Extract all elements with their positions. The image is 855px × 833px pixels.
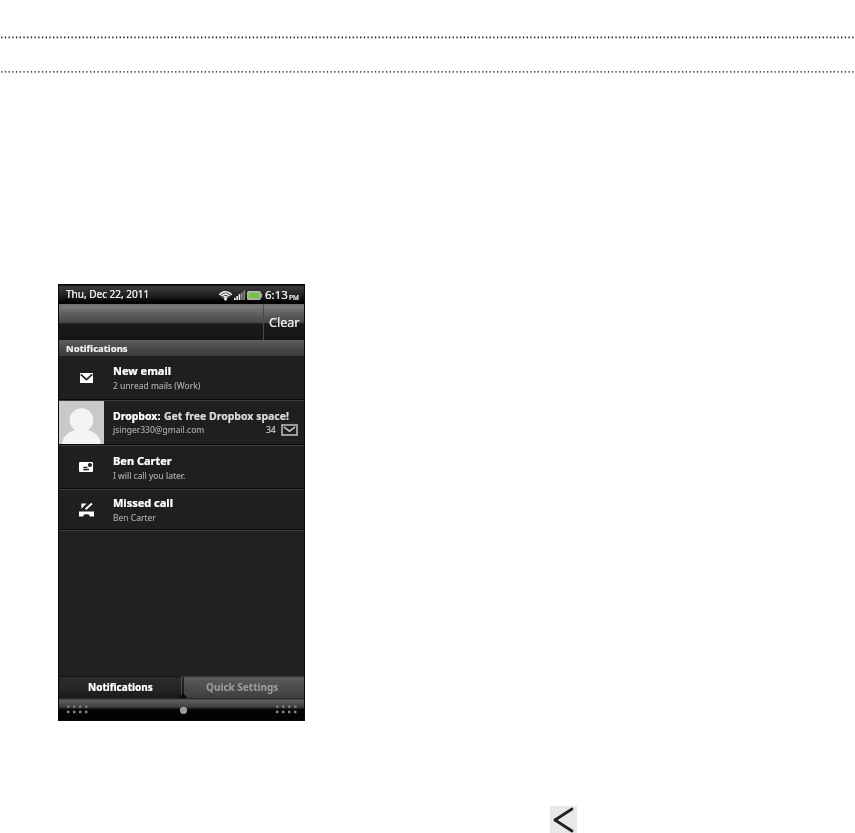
button[interactable]: Notifications — [59, 676, 181, 698]
staticText: Thu, Dec 22, 2011 — [66, 287, 150, 301]
button[interactable]: Dropbox: — [59, 401, 304, 444]
button[interactable]: Previous — [550, 806, 577, 833]
staticText: Notifications — [88, 680, 153, 694]
button[interactable]: Clear — [263, 304, 304, 340]
button[interactable]: New email — [59, 356, 304, 399]
staticText: New email — [113, 363, 172, 378]
staticText: Clear — [269, 314, 300, 331]
button[interactable]: Missed call — [59, 490, 304, 529]
staticText: PM — [289, 293, 299, 302]
staticText: Get free Dropbox space! — [164, 409, 289, 423]
staticText: Ben Carter — [113, 453, 172, 468]
button[interactable]: Drag handle — [59, 698, 304, 720]
staticText: Missed call — [113, 495, 173, 510]
button[interactable]: Quick Settings — [181, 676, 304, 698]
staticText: I will call you later. — [113, 470, 186, 482]
staticText: Notifications — [66, 342, 128, 355]
staticText: Quick Settings — [206, 680, 279, 694]
staticText: Ben Carter — [113, 512, 156, 524]
staticText: 6:13 — [265, 287, 288, 303]
staticText: Dropbox: — [113, 409, 164, 423]
staticText: 2 unread mails (Work) — [113, 380, 201, 392]
button[interactable]: Ben Carter — [59, 446, 304, 488]
staticText: jsinger330@gmail.com — [113, 424, 205, 436]
staticText: 34 — [266, 424, 276, 436]
